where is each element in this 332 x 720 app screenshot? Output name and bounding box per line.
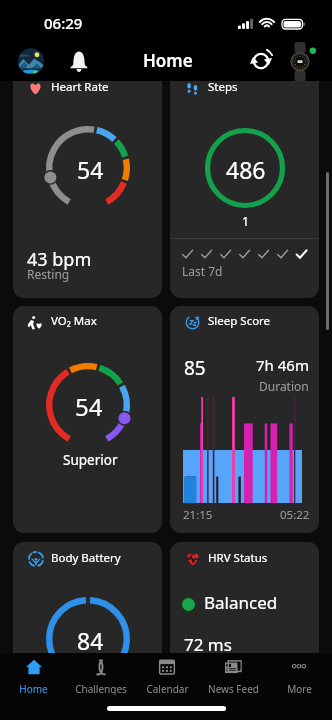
staticText: Body Battery [51, 550, 121, 566]
staticText: Home [19, 682, 48, 695]
staticText: Last 7d [182, 263, 223, 279]
staticText: 486 [226, 154, 266, 185]
staticText: 85 [184, 355, 206, 381]
staticText: News Feed [208, 682, 259, 695]
staticText: 43 bpm [27, 247, 92, 272]
button[interactable]: Profile [18, 48, 44, 74]
staticText: 7h 46m [256, 355, 309, 375]
button[interactable]: Home [0, 655, 67, 695]
staticText: More [287, 682, 312, 695]
staticText: Heart Rate [51, 79, 109, 95]
button[interactable]: Steps [170, 68, 319, 298]
staticText: 54 [77, 154, 104, 185]
button[interactable]: More [266, 655, 332, 695]
button[interactable]: Body Battery [13, 542, 162, 720]
staticText: Challenges [75, 682, 127, 695]
button[interactable]: Challenges [67, 655, 134, 695]
button[interactable]: Sync [247, 47, 275, 75]
staticText: 05:22 [280, 507, 310, 523]
staticText: VO₂ Max [51, 313, 97, 329]
staticText: Superior [63, 451, 118, 469]
button[interactable]: Heart Rate [13, 68, 162, 298]
staticText: HRV Status [208, 550, 268, 566]
button[interactable]: Device [285, 45, 317, 77]
staticText: Calendar [146, 682, 189, 695]
button[interactable]: Sleep Score [170, 306, 319, 533]
staticText: Steps [208, 79, 238, 95]
staticText: Resting [27, 266, 70, 282]
staticText: 84 [77, 625, 104, 656]
staticText: Duration [259, 378, 309, 394]
staticText: Sleep Score [208, 313, 271, 329]
staticText: 72 ms [184, 633, 232, 656]
staticText: 1 [242, 213, 250, 230]
staticText: Home [143, 49, 193, 72]
button[interactable]: VO₂ Max [13, 306, 162, 533]
button[interactable]: News Feed [200, 655, 266, 695]
staticText: Balanced [204, 591, 278, 614]
button[interactable]: HRV Status [170, 542, 319, 720]
staticText: 54 [75, 390, 103, 423]
button[interactable]: Notifications [64, 47, 93, 76]
staticText: 06:29 [44, 13, 83, 33]
staticText: 21:15 [183, 507, 213, 523]
button[interactable]: Calendar [134, 655, 200, 695]
